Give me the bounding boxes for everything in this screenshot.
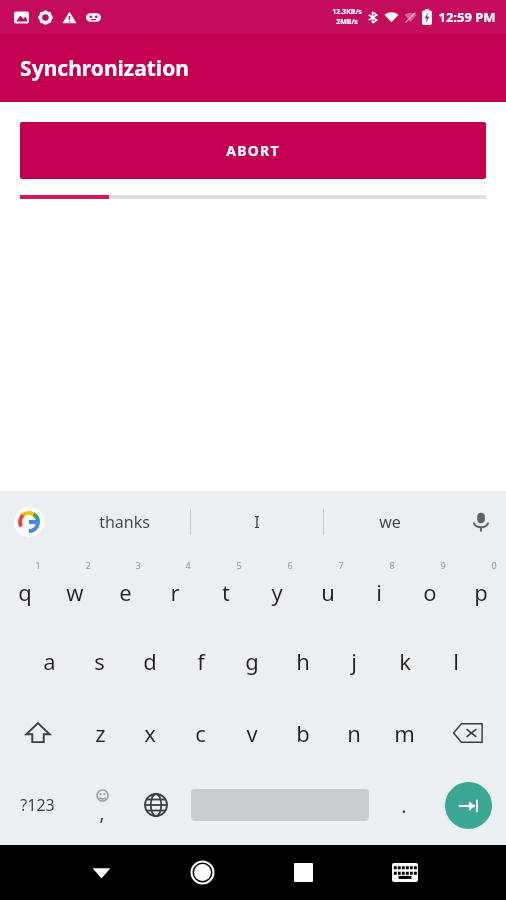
button[interactable]: Backspace (430, 697, 506, 769)
staticText: d (143, 646, 157, 676)
staticText: ?123 (20, 794, 55, 816)
button[interactable]: Space (183, 769, 377, 841)
staticText: 1 (35, 559, 41, 571)
staticText: Synchronization (20, 54, 189, 83)
button[interactable]: we (324, 491, 456, 553)
button[interactable]: v (226, 697, 277, 769)
staticText: i (376, 577, 382, 607)
staticText: 7 (338, 559, 344, 571)
staticText: c (195, 718, 206, 748)
staticText: . (401, 792, 407, 819)
staticText: z (95, 718, 106, 748)
button[interactable]: ABORT (20, 122, 486, 179)
button[interactable]: Google (0, 491, 58, 553)
staticText: 12:59 PM (438, 8, 496, 26)
staticText: , (99, 799, 105, 826)
button[interactable]: I (191, 491, 323, 553)
staticText: m (394, 718, 415, 748)
staticText: 8 (389, 559, 395, 571)
staticText: 2 (85, 559, 91, 571)
button[interactable]: 6 (251, 553, 302, 625)
staticText: g (245, 646, 259, 676)
button[interactable]: Recent apps (253, 845, 354, 900)
staticText: 6 (287, 559, 293, 571)
button[interactable]: 7 (302, 553, 353, 625)
button[interactable]: j (328, 625, 379, 697)
staticText: u (321, 577, 335, 607)
button[interactable]: 1 (0, 553, 50, 625)
button[interactable]: . (377, 769, 431, 841)
staticText: p (474, 577, 488, 607)
button[interactable]: c (175, 697, 226, 769)
button[interactable]: 8 (353, 553, 404, 625)
button[interactable]: Enter (431, 769, 506, 841)
button[interactable]: 0 (455, 553, 506, 625)
button[interactable]: Home (152, 845, 253, 900)
button[interactable]: z (75, 697, 125, 769)
staticText: a (43, 646, 56, 676)
staticText: y (271, 577, 283, 607)
staticText: q (18, 577, 32, 607)
button[interactable]: Shift (0, 697, 75, 769)
staticText: e (119, 577, 132, 607)
button[interactable]: Voice input (456, 491, 506, 553)
staticText: s (94, 646, 105, 676)
staticText: 5 (236, 559, 242, 571)
button[interactable]: x (125, 697, 175, 769)
staticText: w (66, 577, 84, 607)
staticText: 9 (440, 559, 446, 571)
button[interactable]: 3 (100, 553, 150, 625)
staticText: n (347, 718, 361, 748)
button[interactable]: n (328, 697, 379, 769)
staticText: thanks (99, 511, 150, 533)
staticText: l (453, 646, 459, 676)
button[interactable]: 2 (50, 553, 100, 625)
staticText: f (197, 646, 205, 676)
staticText: I (254, 511, 260, 533)
staticText: x (144, 718, 156, 748)
button[interactable]: f (175, 625, 226, 697)
button[interactable]: h (277, 625, 328, 697)
staticText: 2MB/s (336, 17, 358, 27)
staticText: k (399, 646, 411, 676)
staticText: we (379, 511, 401, 533)
button[interactable]: Switch keyboard (354, 845, 455, 900)
staticText: 4 (185, 559, 191, 571)
button[interactable]: s (74, 625, 124, 697)
staticText: ABORT (226, 141, 280, 160)
staticText: o (423, 577, 437, 607)
staticText: 0 (491, 559, 497, 571)
staticText: 12.3KB/s (332, 7, 362, 17)
button[interactable]: Hide keyboard (51, 845, 152, 900)
button[interactable]: g (226, 625, 277, 697)
button[interactable]: 4 (150, 553, 200, 625)
button[interactable]: ?123 (0, 769, 75, 841)
button[interactable]: Change language (129, 769, 183, 841)
button[interactable]: l (430, 625, 481, 697)
button[interactable]: k (379, 625, 430, 697)
staticText: b (296, 718, 310, 748)
staticText: j (351, 646, 357, 676)
button[interactable]: thanks (58, 491, 190, 553)
button[interactable]: Emoji and comma (75, 769, 129, 841)
staticText: h (296, 646, 310, 676)
staticText: 3 (135, 559, 141, 571)
button[interactable]: d (124, 625, 175, 697)
button[interactable]: m (379, 697, 430, 769)
staticText: t (222, 577, 230, 607)
staticText: r (170, 577, 180, 607)
button[interactable]: b (277, 697, 328, 769)
button[interactable]: 9 (404, 553, 455, 625)
staticText: v (246, 718, 258, 748)
button[interactable]: 5 (200, 553, 251, 625)
button[interactable]: a (24, 625, 74, 697)
